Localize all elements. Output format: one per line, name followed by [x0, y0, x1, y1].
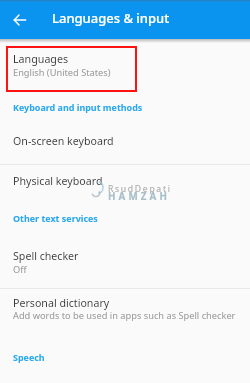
staticText: On-screen keyboard: [13, 134, 114, 149]
staticText: Add words to be used in apps such as Spe…: [13, 309, 236, 322]
staticText: Personal dictionary: [13, 296, 110, 311]
staticText: Physical keyboard: [13, 174, 103, 189]
staticText: Keyboard and input methods: [13, 101, 143, 113]
staticText: English (United States): [13, 66, 111, 79]
staticText: RsudDepati: [108, 183, 172, 195]
staticText: Off: [13, 263, 27, 276]
button[interactable]: [0, 165, 250, 203]
button[interactable]: [0, 289, 250, 335]
button[interactable]: [0, 126, 250, 164]
button[interactable]: [0, 241, 250, 287]
staticText: Other text services: [13, 212, 98, 224]
staticText: HAMZAH: [108, 190, 171, 203]
button[interactable]: [0, 45, 250, 83]
staticText: Languages: [13, 52, 69, 67]
staticText: Languages & input: [52, 9, 170, 27]
staticText: Spell checker: [13, 249, 79, 264]
staticText: Speech: [13, 351, 45, 363]
button[interactable]: Back: [8, 8, 32, 32]
